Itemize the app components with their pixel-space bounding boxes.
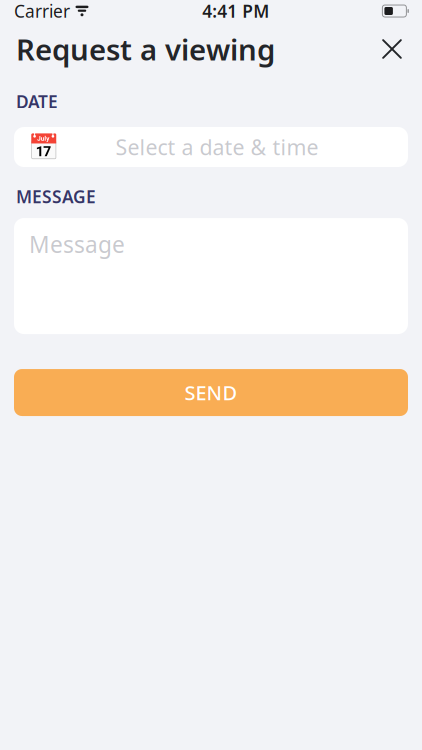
staticText: 4:41 PM <box>202 0 269 22</box>
staticText: Request a viewing <box>16 29 275 68</box>
staticText: SEND <box>184 379 237 406</box>
button[interactable]: Message <box>0 218 422 334</box>
staticText: MESSAGE <box>16 185 96 208</box>
button[interactable]: 📅 <box>0 127 422 167</box>
button[interactable]: SEND <box>0 369 422 416</box>
staticText: 📅 <box>28 132 60 161</box>
staticText: Message <box>29 229 125 259</box>
staticText: Carrier <box>14 0 70 22</box>
staticText: Select a date & time <box>115 133 318 161</box>
staticText: DATE <box>16 90 58 113</box>
button[interactable]: Close <box>370 27 414 71</box>
